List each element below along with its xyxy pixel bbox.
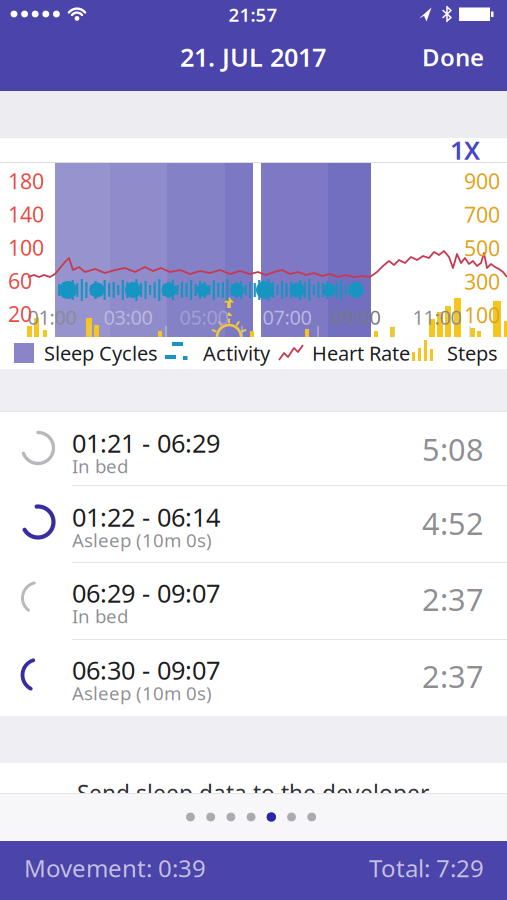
button[interactable]: Done	[404, 37, 484, 77]
staticText: 5:08	[422, 429, 484, 469]
staticText: Heart Rate	[312, 340, 410, 366]
staticText: 2:37	[422, 656, 484, 696]
button[interactable]: 01:22 - 06:14	[0, 486, 507, 559]
staticText: 20	[8, 300, 32, 328]
staticText: Activity	[203, 340, 270, 366]
staticText: 06:30 - 09:07	[72, 653, 220, 687]
staticText: 140	[8, 200, 44, 228]
staticText: 11:00	[412, 304, 461, 330]
staticText: Asleep (10m 0s)	[72, 528, 212, 552]
staticText: 21. JUL 2017	[180, 40, 326, 74]
staticText: 2:37	[422, 579, 484, 619]
staticText: 07:00	[262, 304, 311, 330]
button[interactable]: 1X	[443, 137, 487, 163]
staticText: 03:00	[103, 304, 152, 330]
staticText: 60	[8, 266, 32, 295]
staticText: In bed	[72, 604, 128, 628]
staticText: In bed	[72, 454, 128, 478]
staticText: 100	[8, 233, 44, 261]
staticText: 21:57	[228, 2, 277, 27]
staticText: Asleep (10m 0s)	[72, 681, 212, 705]
staticText: Movement: 0:39	[24, 852, 206, 884]
button[interactable]: Send sleep data to the developer	[53, 781, 453, 805]
staticText: 500	[464, 234, 500, 262]
staticText: 01:21 - 06:29	[72, 426, 220, 460]
staticText: 700	[464, 200, 500, 229]
staticText: 100	[464, 301, 500, 329]
staticText: Total: 7:29	[369, 852, 484, 884]
staticText: 01:00	[27, 304, 76, 330]
staticText: 1X	[450, 133, 480, 167]
staticText: 300	[464, 267, 500, 296]
staticText: Send sleep data to the developer	[77, 778, 429, 808]
button[interactable]: 06:30 - 09:07	[0, 639, 507, 712]
staticText: Sleep Cycles	[44, 340, 158, 366]
staticText: 4:52	[422, 503, 484, 543]
staticText: 01:22 - 06:14	[72, 500, 220, 534]
button[interactable]: 01:21 - 06:29	[0, 412, 507, 485]
staticText: 05:00	[179, 304, 228, 330]
staticText: 06:29 - 09:07	[72, 576, 220, 610]
staticText: Done	[422, 41, 484, 73]
button[interactable]: 06:29 - 09:07	[0, 562, 507, 635]
staticText: Steps	[447, 340, 498, 366]
staticText: 900	[464, 167, 500, 195]
staticText: 180	[8, 167, 44, 195]
staticText: 09:00	[331, 304, 380, 330]
